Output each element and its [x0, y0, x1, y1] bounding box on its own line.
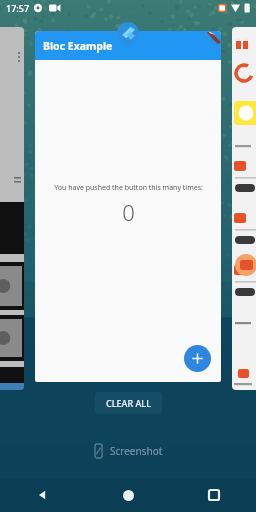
- staticText: Bloc Example: [43, 39, 113, 53]
- button[interactable]: Bloc Example: [35, 31, 221, 382]
- button[interactable]: CLEAR ALL: [95, 392, 162, 414]
- button[interactable]: Screenshot: [87, 441, 169, 461]
- staticText: 17:57: [6, 2, 30, 14]
- button[interactable]: Home: [86, 478, 171, 512]
- button[interactable]: Increment: [184, 345, 211, 372]
- staticText: Screenshot: [110, 444, 163, 458]
- button[interactable]: Back: [0, 478, 86, 512]
- staticText: CLEAR ALL: [106, 397, 151, 409]
- button[interactable]: Recent apps: [171, 478, 256, 512]
- staticText: 0: [122, 197, 135, 227]
- button[interactable]: Bloc Example app icon: [117, 22, 139, 44]
- button[interactable]: Recent app: [0, 27, 24, 390]
- staticText: You have pushed the button this many tim…: [54, 183, 203, 193]
- button[interactable]: Recent app: [232, 27, 256, 390]
